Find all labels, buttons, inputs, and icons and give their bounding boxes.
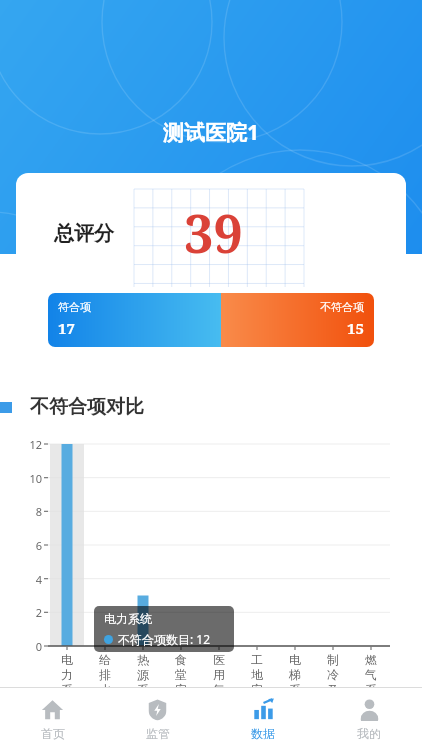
staticText: 系 bbox=[137, 682, 149, 697]
staticText: 电力系统 bbox=[104, 611, 152, 626]
staticText: 及 bbox=[327, 682, 339, 697]
staticText: 系 bbox=[365, 682, 377, 697]
staticText: 首页 bbox=[41, 726, 65, 741]
staticText: 12 bbox=[20, 437, 42, 452]
button[interactable]: 符合项 bbox=[48, 293, 374, 347]
staticText: 8 bbox=[20, 504, 42, 519]
staticText: 符合项 bbox=[58, 300, 91, 314]
staticText: 6 bbox=[20, 538, 42, 553]
staticText: 堂 bbox=[175, 667, 187, 682]
staticText: 医 bbox=[213, 652, 225, 667]
staticText: 地 bbox=[251, 667, 263, 682]
staticText: 热 bbox=[137, 652, 149, 667]
staticText: 安 bbox=[251, 682, 263, 697]
staticText: 燃 bbox=[365, 652, 377, 667]
staticText: 电 bbox=[289, 652, 301, 667]
staticText: 排 bbox=[99, 667, 111, 682]
button[interactable]: 我的 bbox=[316, 688, 422, 750]
staticText: 39 bbox=[184, 197, 243, 268]
staticText: 不符合项数目: 12 bbox=[118, 631, 211, 647]
staticText: 电 bbox=[61, 652, 73, 667]
staticText: 系 bbox=[289, 682, 301, 697]
staticText: 不符合项 bbox=[320, 300, 364, 314]
staticText: 不符合项对比 bbox=[30, 395, 144, 419]
staticText: 0 bbox=[20, 639, 42, 654]
staticText: 系 bbox=[61, 682, 73, 697]
staticText: 梯 bbox=[289, 667, 301, 682]
button[interactable]: 总评分 bbox=[16, 173, 406, 361]
staticText: 食 bbox=[175, 652, 187, 667]
button[interactable]: 首页 bbox=[0, 688, 105, 750]
staticText: 气 bbox=[365, 667, 377, 682]
staticText: 水 bbox=[99, 682, 111, 697]
staticText: 17 bbox=[58, 318, 75, 338]
staticText: 10 bbox=[20, 471, 42, 486]
staticText: 2 bbox=[20, 605, 42, 620]
staticText: 15 bbox=[347, 318, 364, 338]
staticText: 总评分 bbox=[54, 221, 114, 246]
staticText: 给 bbox=[99, 652, 111, 667]
staticText: 测试医院1 bbox=[163, 118, 260, 147]
staticText: 气 bbox=[213, 682, 225, 697]
staticText: 监管 bbox=[146, 726, 170, 741]
staticText: 安 bbox=[175, 682, 187, 697]
staticText: 制 bbox=[327, 652, 339, 667]
staticText: 数据 bbox=[251, 726, 275, 741]
button[interactable]: 监管 bbox=[105, 688, 210, 750]
staticText: 冷 bbox=[327, 667, 339, 682]
staticText: 用 bbox=[213, 667, 225, 682]
staticText: 我的 bbox=[357, 726, 381, 741]
staticText: 4 bbox=[20, 572, 42, 587]
button[interactable]: 数据 bbox=[210, 688, 316, 750]
staticText: 力 bbox=[61, 667, 73, 682]
staticText: 工 bbox=[251, 652, 263, 667]
staticText: 源 bbox=[137, 667, 149, 682]
